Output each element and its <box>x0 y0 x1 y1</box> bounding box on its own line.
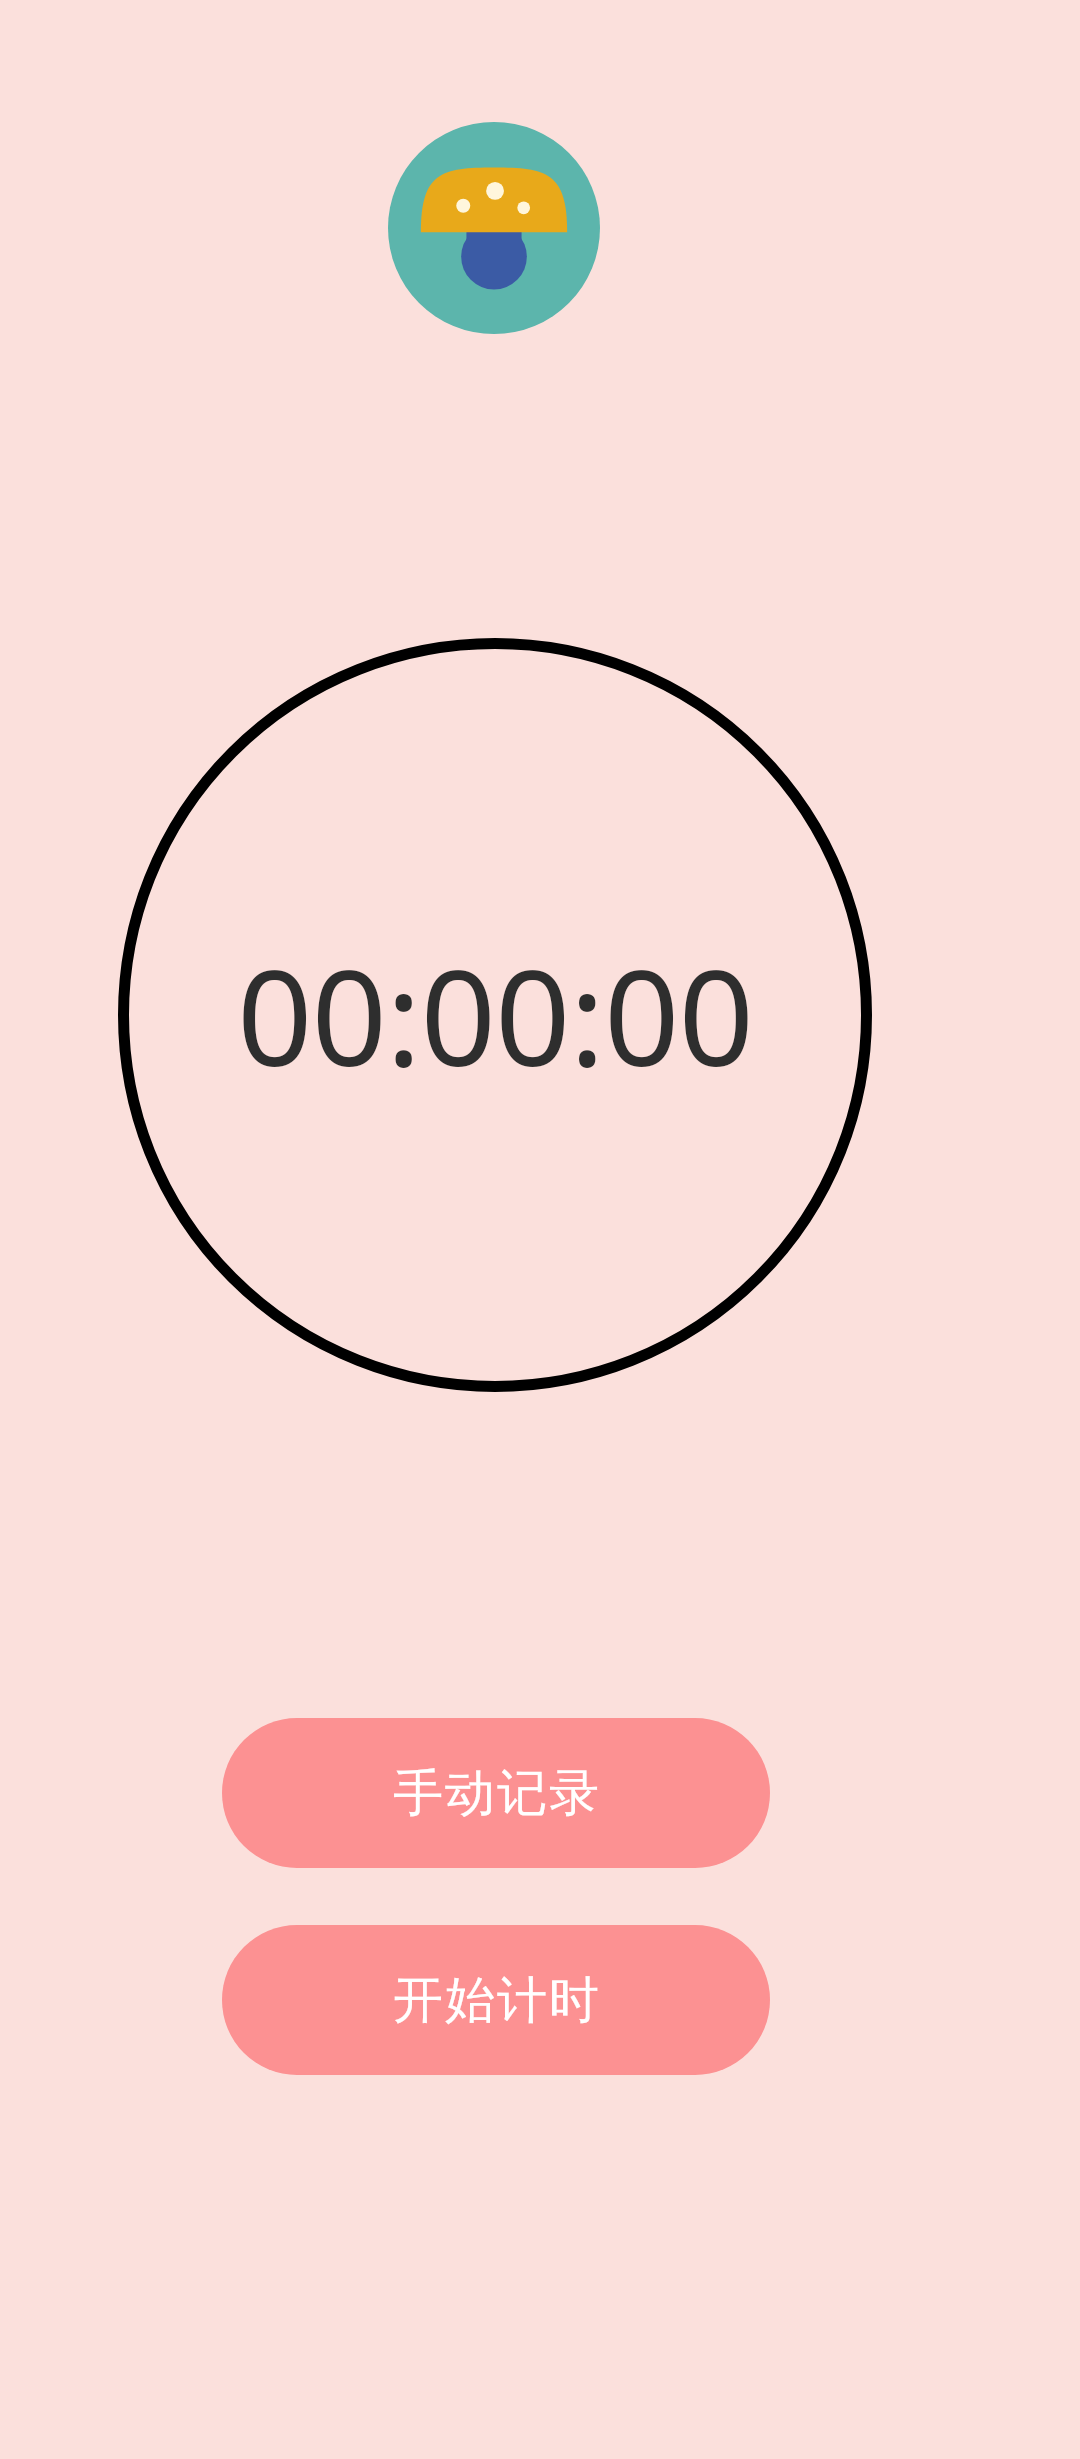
button[interactable]: 开始计时 <box>222 1925 770 2075</box>
staticText: 手动记录 <box>392 1762 600 1825</box>
staticText: 00:00:00 <box>237 925 753 1105</box>
other: App logo <box>388 122 600 334</box>
staticText: 开始计时 <box>392 1969 600 2032</box>
button[interactable]: 手动记录 <box>222 1718 770 1868</box>
